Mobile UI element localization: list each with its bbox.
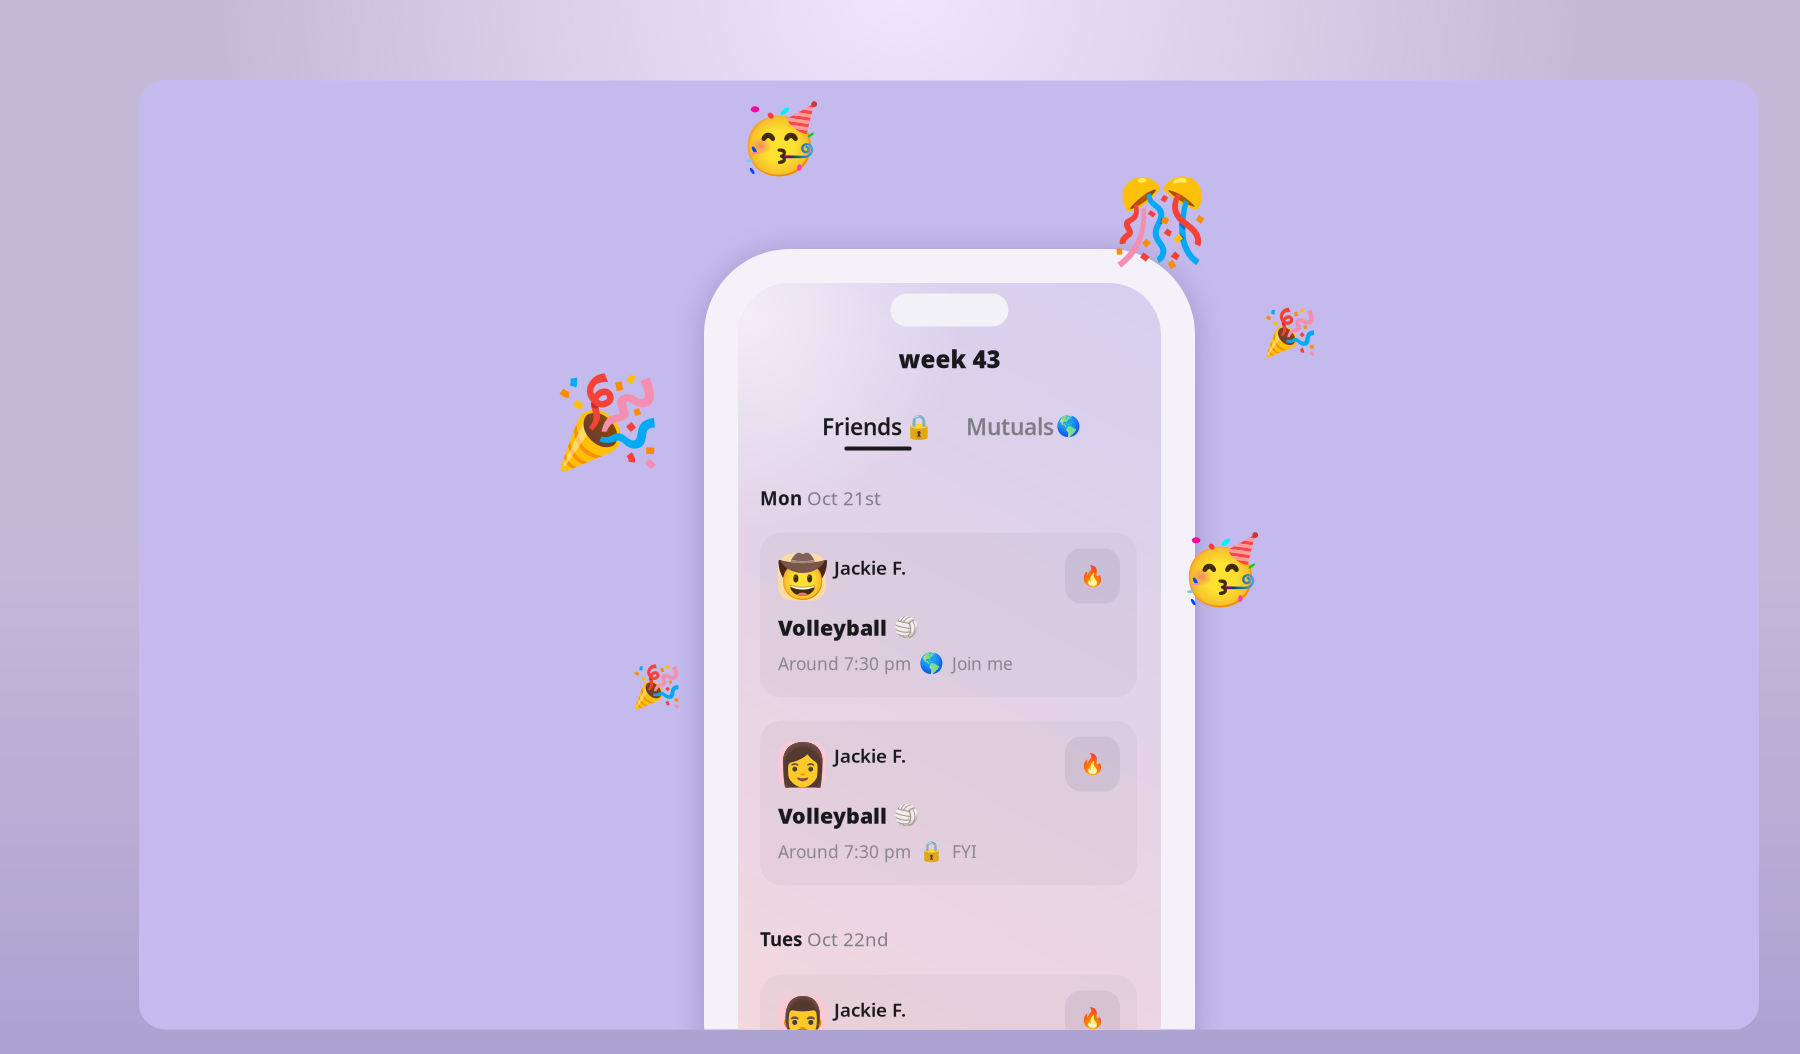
- staticText: 🥳: [737, 101, 820, 177]
- button[interactable]: 🤠: [760, 532, 1137, 697]
- staticText: 🥳: [1178, 532, 1261, 608]
- staticText: week 43: [898, 343, 1000, 375]
- staticText: FYI: [952, 840, 977, 863]
- staticText: Mutuals: [966, 411, 1054, 441]
- button[interactable]: React with fire: [1065, 736, 1120, 791]
- staticText: Join me: [952, 652, 1013, 675]
- staticText: Volleyball: [778, 801, 887, 830]
- staticText: Oct 22nd: [807, 927, 888, 951]
- staticText: 🧔‍♂️: [776, 995, 827, 1043]
- staticText: 🌎: [919, 652, 944, 675]
- button[interactable]: React with fire: [1065, 990, 1120, 1045]
- staticText: 🌎: [1056, 415, 1081, 438]
- staticText: 🏐: [894, 804, 919, 827]
- staticText: Around 7:30 pm: [778, 840, 911, 863]
- staticText: 🎉: [551, 371, 662, 473]
- staticText: 🤠: [776, 553, 827, 601]
- staticText: Oct 21st: [807, 486, 881, 510]
- staticText: Around 7:30 pm: [778, 652, 911, 675]
- button[interactable]: Mutuals: [966, 411, 1081, 450]
- staticText: Volleyball: [778, 613, 887, 642]
- staticText: Tues: [760, 927, 802, 951]
- staticText: 🎊: [1109, 176, 1212, 270]
- staticText: Jackie F.: [834, 997, 906, 1022]
- button[interactable]: 👩: [760, 720, 1137, 885]
- staticText: 🔒: [919, 840, 944, 863]
- staticText: 🔥: [1080, 565, 1105, 587]
- staticText: 🔥: [1080, 1007, 1105, 1029]
- staticText: Mon: [760, 486, 802, 510]
- staticText: Jackie F.: [834, 743, 906, 768]
- staticText: 🎉: [1262, 307, 1318, 359]
- staticText: 🔒: [904, 413, 934, 440]
- staticText: Jackie F.: [834, 555, 906, 580]
- button[interactable]: React with fire: [1065, 548, 1120, 603]
- staticText: 🏐: [894, 616, 919, 639]
- button[interactable]: 🧔‍♂️: [760, 974, 1137, 1054]
- staticText: 🔥: [1080, 753, 1105, 775]
- staticText: 👩: [776, 741, 827, 789]
- staticText: 🎉: [630, 663, 681, 711]
- button[interactable]: Friends: [822, 411, 934, 450]
- staticText: Friends: [822, 411, 902, 441]
